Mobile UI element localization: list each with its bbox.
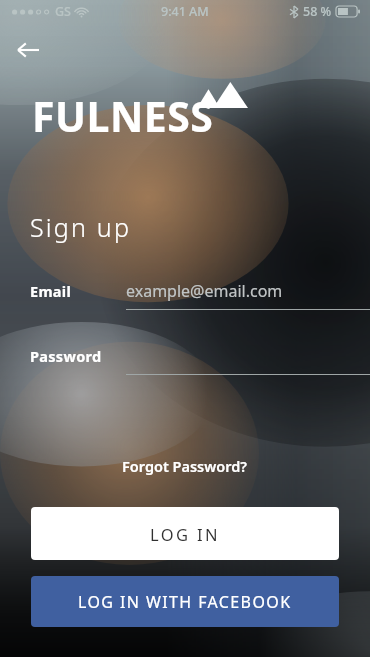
button[interactable]: Password — [0, 337, 370, 375]
button[interactable]: LOG IN WITH FACEBOOK — [31, 576, 339, 627]
staticText: Sign up — [30, 210, 132, 244]
button[interactable]: LOG IN — [31, 507, 339, 560]
staticText: example@email.com — [126, 280, 283, 302]
button[interactable]: Forgot Password? — [112, 450, 258, 482]
staticText: 58 % — [303, 3, 332, 20]
button[interactable]: Back — [4, 26, 52, 74]
staticText: FULNESS — [32, 88, 214, 144]
staticText: Password — [30, 346, 102, 366]
staticText: Forgot Password? — [122, 456, 248, 476]
staticText: LOG IN WITH FACEBOOK — [78, 591, 292, 613]
staticText: 9:41 AM — [161, 3, 209, 20]
staticText: Email — [30, 281, 72, 301]
button[interactable]: Email — [0, 272, 370, 310]
staticText: LOG IN — [150, 523, 221, 545]
staticText: GS — [55, 3, 71, 20]
